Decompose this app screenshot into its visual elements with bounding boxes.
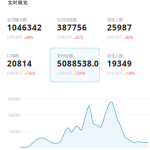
staticText: 成交人数 xyxy=(107,53,123,58)
staticText: +80% xyxy=(124,34,133,40)
button[interactable]: 支付金额 xyxy=(50,48,100,82)
staticText: 150000 xyxy=(8,129,20,134)
staticText: 比前30天 xyxy=(57,70,73,76)
button[interactable]: 订单数 xyxy=(0,48,50,82)
staticText: 450000 xyxy=(8,96,20,102)
staticText: 支付金额 xyxy=(57,53,73,58)
staticText: 300000 xyxy=(8,112,20,118)
staticText: 实时概览 xyxy=(8,0,28,6)
staticText: 19349 xyxy=(107,58,132,69)
button[interactable]: 浏览人数 xyxy=(100,12,150,46)
staticText: 387756 xyxy=(57,22,87,33)
staticText: 25987 xyxy=(107,22,132,33)
staticText: 1046342 xyxy=(7,22,42,33)
staticText: +129% xyxy=(74,70,85,76)
staticText: 订单数 xyxy=(7,53,19,58)
staticText: 宝贝曝光数 xyxy=(7,17,27,22)
staticText: 比前30天 xyxy=(7,70,23,76)
staticText: +138% xyxy=(124,70,135,76)
staticText: 比前30天 xyxy=(7,34,23,40)
staticText: 宝贝浏览数 xyxy=(57,17,77,22)
button[interactable]: 宝贝浏览数 xyxy=(50,12,100,46)
staticText: 5088538.0 xyxy=(57,58,99,69)
staticText: 比前30天 xyxy=(107,70,123,76)
staticText: 浏览人数 xyxy=(107,17,123,22)
staticText: 比前30天 xyxy=(57,34,73,40)
staticText: 20814 xyxy=(7,58,32,69)
button[interactable]: 宝贝曝光数 xyxy=(0,12,50,46)
staticText: 比前30天 xyxy=(107,34,123,40)
staticText: +82% xyxy=(74,34,83,40)
staticText: +48% xyxy=(24,34,33,40)
button[interactable]: 成交人数 xyxy=(100,48,150,82)
staticText: +136% xyxy=(24,70,35,76)
